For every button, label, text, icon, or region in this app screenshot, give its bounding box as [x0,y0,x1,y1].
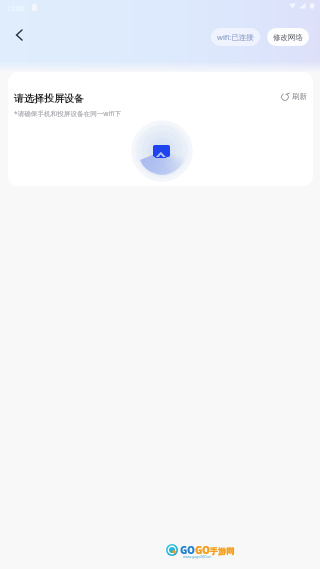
staticText: 12:00 [7,4,24,13]
staticText: www.gogo360.cn [183,554,212,559]
staticText: GO [180,543,195,557]
button[interactable]: Back [8,24,30,46]
staticText: 刷新 [292,92,307,101]
staticText: 修改网络 [273,33,303,42]
staticText: *请确保手机和投屏设备在同一wifi下 [14,109,121,118]
button[interactable]: wifi:已连接 [211,28,260,46]
staticText: 请选择投屏设备 [14,92,84,105]
staticText: GO [195,543,210,557]
staticText: wifi:已连接 [217,32,254,42]
staticText: 手游网 [210,546,234,556]
button[interactable]: 刷新 [279,90,309,103]
button[interactable]: 修改网络 [267,28,309,46]
